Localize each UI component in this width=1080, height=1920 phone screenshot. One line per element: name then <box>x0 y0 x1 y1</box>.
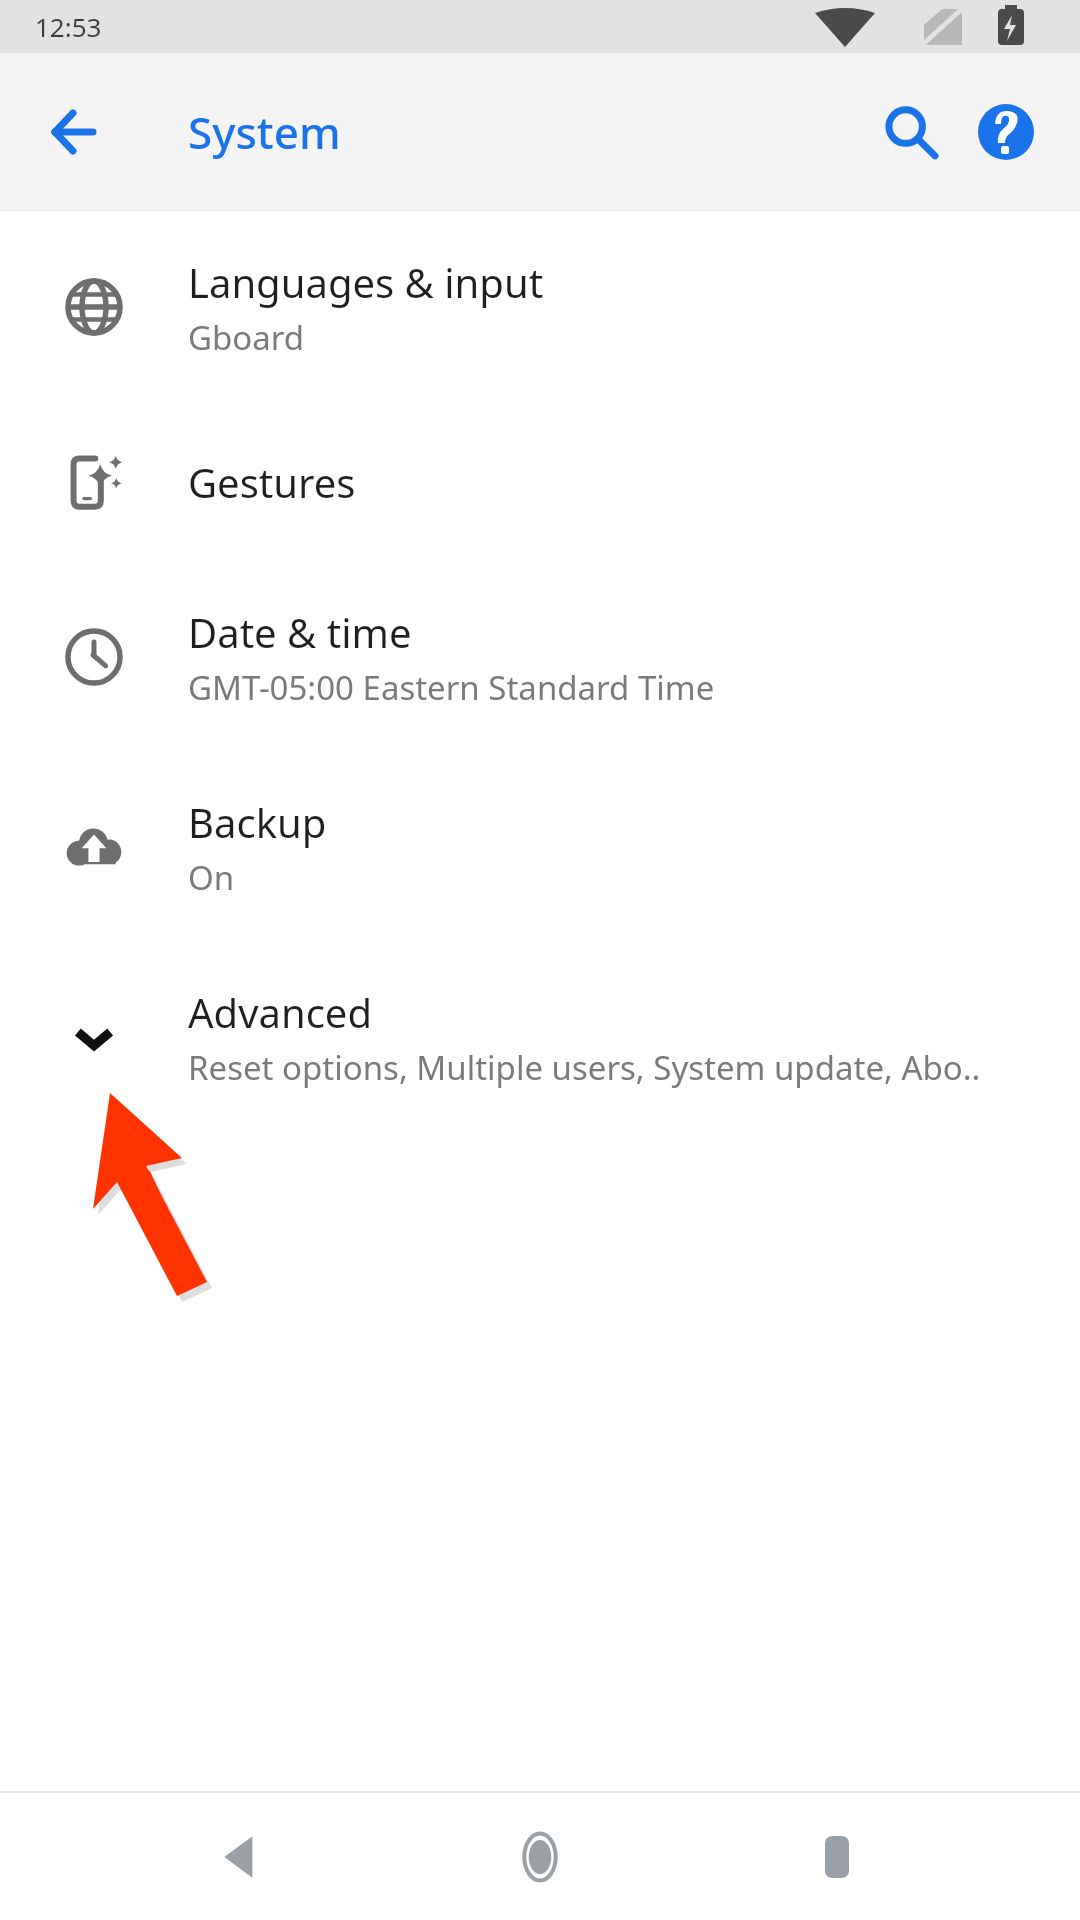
button[interactable]: Help <box>958 84 1054 180</box>
staticText: Gestures <box>188 455 356 509</box>
button[interactable]: Languages & input <box>0 212 1080 402</box>
button[interactable]: Advanced <box>0 942 1080 1132</box>
staticText: Languages & input <box>188 255 544 309</box>
staticText: Backup <box>188 795 327 849</box>
button[interactable]: Home <box>475 1793 605 1920</box>
button[interactable]: Date & time <box>0 562 1080 752</box>
staticText: 12:53 <box>35 9 102 44</box>
button[interactable]: Back <box>178 1793 308 1920</box>
button[interactable]: Search <box>862 84 958 180</box>
staticText: System <box>188 102 341 162</box>
staticText: On <box>188 855 235 900</box>
button[interactable]: Back <box>28 87 118 177</box>
staticText: Date & time <box>188 605 412 659</box>
button[interactable]: Backup <box>0 752 1080 942</box>
staticText: Reset options, Multiple users, System up… <box>188 1045 981 1090</box>
staticText: Gboard <box>188 315 305 360</box>
button[interactable]: Gestures <box>0 402 1080 562</box>
button[interactable]: Recents <box>772 1793 902 1920</box>
staticText: Advanced <box>188 985 372 1039</box>
staticText: GMT-05:00 Eastern Standard Time <box>188 665 715 710</box>
